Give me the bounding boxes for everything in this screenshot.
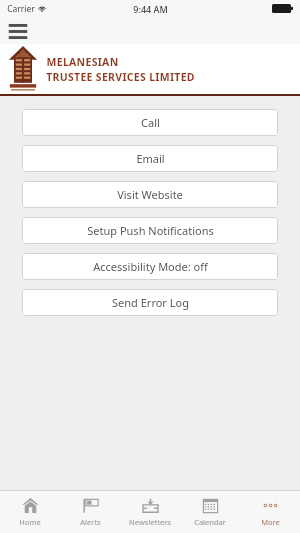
- button[interactable]: Calendar: [180, 491, 240, 533]
- button[interactable]: More: [240, 491, 300, 533]
- button[interactable]: Setup Push Notifications: [22, 217, 278, 244]
- staticText: Accessibility Mode: off: [93, 259, 208, 274]
- staticText: Newsletters: [129, 517, 171, 527]
- staticText: Setup Push Notifications: [87, 223, 214, 238]
- staticText: Send Error Log: [112, 295, 189, 310]
- button[interactable]: Call: [22, 109, 278, 136]
- button[interactable]: Menu: [6, 21, 30, 41]
- staticText: Email: [136, 151, 165, 166]
- staticText: Home: [19, 517, 41, 527]
- staticText: 9:44 AM: [133, 3, 168, 15]
- staticText: More: [261, 517, 280, 527]
- staticText: Call: [141, 115, 160, 130]
- button[interactable]: Email: [22, 145, 278, 172]
- staticText: Visit Website: [117, 187, 183, 202]
- button[interactable]: Newsletters: [120, 491, 180, 533]
- button[interactable]: Home: [0, 491, 60, 533]
- button[interactable]: Accessibility Mode: off: [22, 253, 278, 280]
- staticText: Carrier: [7, 3, 35, 15]
- button[interactable]: Visit Website: [22, 181, 278, 208]
- button[interactable]: Alerts: [60, 491, 120, 533]
- staticText: MELANESIAN: [46, 55, 119, 69]
- staticText: TRUSTEE SERVICES LIMITED: [46, 70, 195, 84]
- staticText: Alerts: [80, 517, 101, 527]
- button[interactable]: Send Error Log: [22, 289, 278, 316]
- staticText: Calendar: [194, 517, 226, 527]
